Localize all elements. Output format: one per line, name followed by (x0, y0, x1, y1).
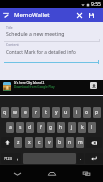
button[interactable] (86, 137, 102, 148)
staticText: u (64, 109, 68, 116)
staticText: j (71, 124, 73, 131)
staticText: q (3, 109, 7, 116)
button[interactable]: e (21, 107, 29, 118)
button[interactable]: ?123 (1, 153, 14, 164)
button[interactable]: g (47, 122, 55, 133)
button[interactable]: Home (35, 165, 69, 182)
staticText: h (59, 124, 63, 131)
button[interactable]: i (73, 107, 81, 118)
button[interactable]: w (11, 107, 19, 118)
staticText: z (17, 139, 20, 146)
staticText: c (38, 139, 41, 146)
button[interactable]: Install (90, 82, 97, 89)
staticText: x (28, 139, 31, 146)
button[interactable]: q (1, 107, 9, 118)
button[interactable]: b (56, 137, 64, 148)
staticText: MemoWallet (14, 11, 50, 19)
staticText: p (95, 109, 99, 116)
button[interactable]: n (66, 137, 74, 148)
button[interactable]: y (52, 107, 60, 118)
button[interactable] (1, 137, 14, 148)
staticText: g (49, 124, 53, 131)
staticText: w (13, 109, 17, 116)
button[interactable] (85, 153, 103, 164)
button[interactable]: a (6, 122, 14, 133)
staticText: v (48, 139, 51, 146)
staticText: d (28, 124, 32, 131)
staticText: , (17, 155, 19, 162)
staticText: Contact Mark for a detailed info (6, 49, 76, 55)
staticText: i (76, 109, 78, 116)
staticText: It's here City Island 2 (14, 81, 45, 85)
button[interactable]: z (14, 137, 22, 148)
button[interactable]: , (14, 153, 21, 164)
button[interactable]: . (77, 153, 84, 164)
button[interactable]: p (93, 107, 101, 118)
staticText: k (81, 124, 84, 131)
staticText: ?123 (4, 156, 12, 161)
staticText: . (80, 155, 82, 162)
staticText: r (35, 109, 38, 116)
staticText: o (85, 109, 89, 116)
button[interactable]: x (25, 137, 33, 148)
button[interactable]: Recent apps (69, 165, 103, 182)
staticText: Content (6, 42, 19, 47)
button[interactable]: c (35, 137, 43, 148)
staticText: l (91, 124, 93, 131)
button[interactable]: l (88, 122, 96, 133)
button[interactable]: j (68, 122, 76, 133)
staticText: f (40, 124, 42, 131)
button[interactable]: v (45, 137, 53, 148)
staticText: Title (6, 25, 13, 30)
button[interactable]: Save (85, 8, 98, 22)
staticText: a (9, 124, 12, 131)
staticText: y (55, 109, 58, 116)
button[interactable]: h (57, 122, 65, 133)
staticText: s (19, 124, 22, 131)
button[interactable]: Discard (73, 8, 86, 22)
button[interactable]: t (42, 107, 50, 118)
button[interactable]: It's here City Island 2 (0, 80, 103, 95)
button[interactable]: Hide keyboard (0, 165, 35, 182)
button[interactable]: m (76, 137, 84, 148)
staticText: 9:55 (91, 1, 101, 8)
button[interactable]: u (62, 107, 70, 118)
button[interactable]: r (32, 107, 40, 118)
button[interactable]: s (16, 122, 24, 133)
button[interactable]: o (83, 107, 91, 118)
staticText: Download from Google Play (14, 85, 55, 89)
staticText: b (58, 139, 62, 146)
staticText: n (68, 139, 72, 146)
button[interactable]: App icon (0, 8, 11, 22)
button[interactable]: f (37, 122, 45, 133)
button[interactable]: d (26, 122, 34, 133)
staticText: e (24, 109, 27, 116)
staticText: m (78, 139, 83, 146)
staticText: t (45, 109, 47, 116)
button[interactable]: k (78, 122, 86, 133)
staticText: Schedule a new meeting (6, 31, 65, 38)
